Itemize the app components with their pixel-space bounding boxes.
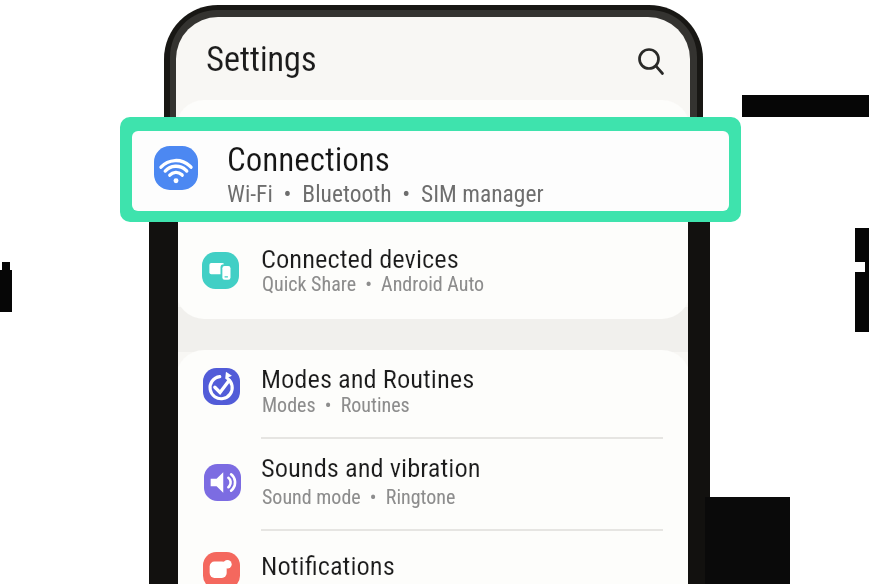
staticText: Notifications bbox=[261, 550, 395, 581]
staticText: Connections bbox=[227, 140, 390, 179]
button[interactable] bbox=[632, 44, 668, 80]
staticText: Settings bbox=[206, 39, 317, 80]
staticText: Sound mode • Ringtone bbox=[262, 485, 456, 508]
button[interactable]: Connections bbox=[132, 131, 729, 211]
button[interactable]: Modes and Routines bbox=[176, 350, 690, 438]
button[interactable]: Connected devices bbox=[176, 230, 690, 319]
button[interactable]: Notifications bbox=[176, 531, 690, 584]
staticText: Connected devices bbox=[261, 243, 459, 274]
staticText: Wi-Fi • Bluetooth • SIM manager bbox=[227, 180, 544, 208]
button[interactable]: Sounds and vibration bbox=[176, 438, 690, 529]
staticText: Quick Share • Android Auto bbox=[262, 272, 485, 295]
staticText: Modes • Routines bbox=[262, 393, 410, 416]
staticText: Modes and Routines bbox=[261, 363, 475, 394]
staticText: Sounds and vibration bbox=[261, 452, 481, 483]
